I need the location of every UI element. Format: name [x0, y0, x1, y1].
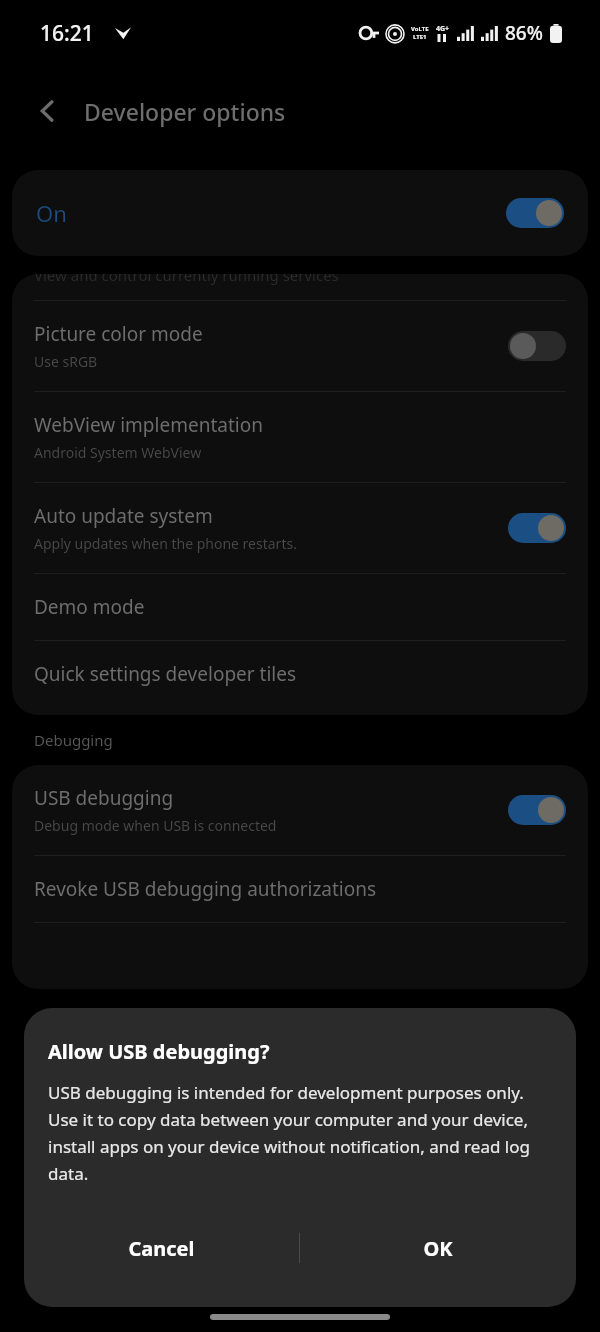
staticText: 16:21	[40, 19, 94, 48]
button[interactable]: Off	[508, 331, 566, 361]
staticText: VoLTE	[411, 25, 429, 33]
staticText: Debugging	[34, 730, 113, 750]
button[interactable]: Back	[26, 89, 70, 133]
button[interactable]: On	[508, 795, 566, 825]
button[interactable]: Cancel	[24, 1211, 299, 1285]
staticText: 4G+	[436, 24, 450, 34]
staticText: Picture color mode	[34, 321, 203, 347]
staticText: View and control currently running servi…	[34, 274, 339, 285]
staticText: Quick settings developer tiles	[34, 661, 297, 687]
staticText: Developer options	[84, 96, 286, 127]
staticText: Demo mode	[34, 594, 145, 620]
button[interactable]: Demo mode	[12, 574, 588, 640]
button[interactable]: Auto update system	[12, 483, 588, 573]
staticText: LTE1	[413, 33, 427, 41]
staticText: WebView implementation	[34, 412, 263, 438]
staticText: USB debugging is intended for developmen…	[48, 1081, 552, 1185]
staticText: OK	[423, 1235, 453, 1262]
staticText: Apply updates when the phone restarts.	[34, 534, 297, 553]
button[interactable]: On	[506, 198, 564, 228]
staticText: Debug mode when USB is connected	[34, 816, 277, 835]
button[interactable]: OK	[300, 1211, 576, 1285]
staticText: On	[36, 198, 506, 228]
staticText: Use sRGB	[34, 352, 98, 371]
button[interactable]: Picture color mode	[12, 301, 588, 391]
button[interactable]: On	[508, 513, 566, 543]
staticText: Android System WebView	[34, 443, 202, 462]
button[interactable]: USB debugging	[12, 765, 588, 855]
button[interactable]: Quick settings developer tiles	[12, 641, 588, 707]
button[interactable]: WebView implementation	[12, 392, 588, 482]
staticText: 86%	[505, 20, 543, 46]
staticText: Auto update system	[34, 503, 213, 529]
staticText: Revoke USB debugging authorizations	[34, 876, 377, 902]
staticText: Allow USB debugging?	[48, 1038, 270, 1065]
staticText: Cancel	[128, 1235, 195, 1262]
button[interactable]: Revoke USB debugging authorizations	[12, 856, 588, 922]
staticText: USB debugging	[34, 785, 174, 811]
button[interactable]: On	[12, 170, 588, 256]
